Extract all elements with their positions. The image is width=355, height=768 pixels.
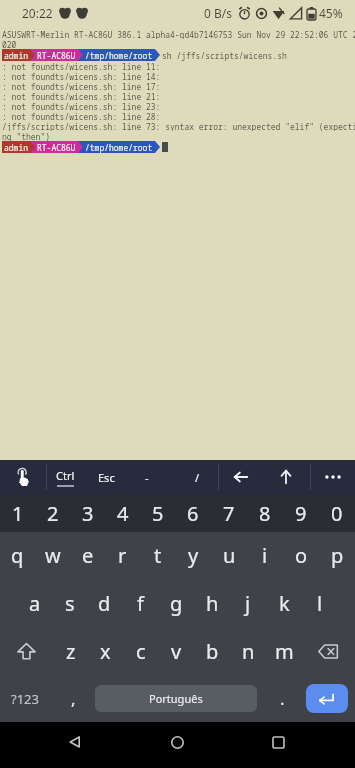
button[interactable]: 3 [70, 494, 105, 532]
staticText: , [71, 687, 76, 710]
button[interactable] [311, 460, 355, 494]
button[interactable]: v [158, 627, 194, 675]
button[interactable]: Esc [86, 460, 126, 494]
staticText: j [245, 590, 251, 617]
staticText: RT-AC86U [37, 142, 76, 153]
staticText: admin [4, 50, 28, 61]
staticText: : not foundts/wicens.sh: line 23: [2, 101, 161, 111]
button[interactable]: 6 [175, 494, 211, 532]
staticText: w [45, 542, 61, 569]
staticText: 0 [331, 500, 343, 527]
button[interactable]: n [230, 627, 266, 675]
staticText: RT-AC86U [37, 50, 76, 61]
button[interactable] [222, 460, 259, 494]
button[interactable]: d [87, 579, 122, 627]
staticText: z [66, 638, 76, 665]
staticText: 9 [295, 500, 307, 527]
button[interactable]: 4 [105, 494, 140, 532]
button[interactable]: u [211, 532, 247, 579]
button[interactable]: 9 [283, 494, 319, 532]
staticText: : not foundts/wicens.sh: line 17: [2, 81, 161, 91]
button[interactable]: k [266, 579, 302, 627]
button[interactable] [267, 460, 304, 494]
button[interactable]: 2 [35, 494, 70, 532]
button[interactable]: r [105, 532, 140, 579]
button[interactable]: 7 [211, 494, 247, 532]
button[interactable] [306, 684, 348, 713]
button[interactable]: i [247, 532, 283, 579]
button[interactable]: / [177, 460, 217, 494]
button[interactable]: q [0, 532, 35, 579]
staticText: : not foundts/wicens.sh: line 11: [2, 61, 161, 71]
button[interactable]: b [194, 627, 230, 675]
staticText: a [29, 590, 41, 617]
staticText: /tmp/home/root [85, 142, 153, 153]
staticText: n [242, 638, 255, 665]
staticText: - [145, 470, 149, 485]
button[interactable]: s [52, 579, 87, 627]
button[interactable]: f [122, 579, 158, 627]
staticText: 5 [152, 500, 164, 527]
button[interactable]: x [88, 627, 123, 675]
staticText: b [206, 638, 219, 665]
button[interactable]: 8 [247, 494, 283, 532]
staticText: /jffs/scripts/wicens.sh: line 73: syntax… [2, 121, 355, 131]
button[interactable]: p [319, 532, 355, 579]
button[interactable]: 0 [319, 494, 355, 532]
button[interactable]: e [70, 532, 105, 579]
button[interactable]: , [53, 675, 93, 722]
button[interactable]: y [175, 532, 211, 579]
button[interactable]: g [158, 579, 194, 627]
button[interactable] [0, 460, 46, 494]
staticText: : not foundts/wicens.sh: line 28: [2, 111, 161, 121]
staticText: 4 [117, 500, 129, 527]
staticText: d [98, 590, 111, 617]
button[interactable]: Português [95, 685, 257, 712]
staticText: u [223, 542, 236, 569]
button[interactable]: 5 [140, 494, 175, 532]
button[interactable] [0, 627, 53, 675]
staticText: 45% [319, 5, 343, 21]
button[interactable]: . [262, 675, 302, 722]
staticText: sh /jffs/scripts/wicens.sh [162, 50, 287, 61]
staticText: Ctrl [56, 468, 75, 483]
button[interactable]: l [302, 579, 338, 627]
staticText: 2 [47, 500, 59, 527]
staticText: l [317, 590, 323, 617]
button[interactable]: ?123 [0, 675, 50, 722]
button[interactable]: Ctrl [45, 460, 85, 494]
staticText: 1 [12, 500, 24, 527]
staticText: 0 B/s [204, 5, 232, 21]
staticText: ASUSWRT-Merlin RT-AC86U 386.1_alpha4-gd4… [2, 29, 355, 39]
staticText: r [118, 542, 127, 569]
button[interactable]: j [230, 579, 266, 627]
button[interactable]: w [35, 532, 70, 579]
staticText: 7 [223, 500, 235, 527]
staticText: m [275, 638, 294, 665]
staticText: / [195, 470, 200, 485]
staticText: v [171, 638, 182, 665]
button[interactable]: h [194, 579, 230, 627]
staticText: s [65, 590, 75, 617]
button[interactable]: t [140, 532, 175, 579]
staticText: 6 [187, 500, 199, 527]
staticText: 8 [259, 500, 271, 527]
staticText: 20:22 [22, 5, 53, 21]
staticText: . [280, 687, 285, 710]
button[interactable]: m [266, 627, 302, 675]
button[interactable]: o [283, 532, 319, 579]
staticText: Esc [98, 470, 115, 485]
staticText: c [136, 638, 146, 665]
button[interactable]: z [53, 627, 88, 675]
button[interactable] [55, 722, 95, 768]
button[interactable]: 1 [0, 494, 35, 532]
staticText: x [100, 638, 111, 665]
staticText: g [170, 590, 183, 617]
button[interactable]: - [127, 460, 167, 494]
button[interactable] [302, 627, 355, 675]
button[interactable] [157, 722, 197, 768]
button[interactable] [258, 722, 298, 768]
button[interactable]: a [17, 579, 52, 627]
button[interactable]: c [123, 627, 158, 675]
staticText: i [262, 542, 268, 569]
